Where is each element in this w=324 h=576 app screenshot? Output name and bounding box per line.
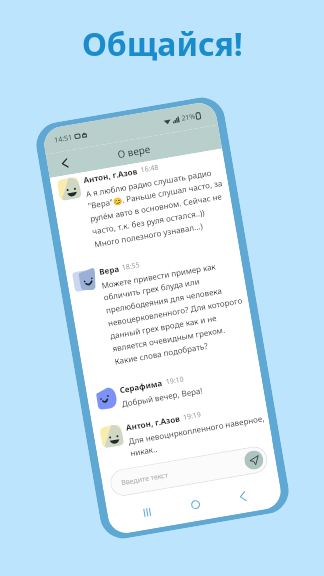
staticText: 19:10 bbox=[165, 374, 184, 387]
button[interactable]: Back bbox=[232, 486, 253, 506]
staticText: Антон, г.Азов bbox=[82, 165, 139, 185]
button[interactable]: Home bbox=[185, 494, 205, 515]
staticText: Общайся! bbox=[82, 22, 243, 66]
button[interactable]: Введите текст bbox=[108, 444, 269, 498]
button[interactable]: Recents bbox=[136, 502, 157, 523]
button[interactable]: Send bbox=[243, 449, 265, 471]
staticText: Для невоцнркопленного наверное, никак.. bbox=[127, 412, 267, 458]
staticText: Антон, г.Азов bbox=[125, 412, 181, 433]
staticText: О вере bbox=[116, 142, 151, 161]
staticText: А я люблю радио слушать радио "Вера"😊. Р… bbox=[85, 165, 231, 249]
staticText: 19:19 bbox=[182, 410, 202, 423]
staticText: 21% bbox=[181, 112, 196, 124]
button[interactable]: Back bbox=[55, 154, 74, 173]
staticText: Введите текст bbox=[121, 470, 170, 488]
staticText: Серафима bbox=[119, 377, 164, 395]
staticText: 14:51 bbox=[54, 133, 73, 146]
staticText: Добрый вечер, Вера! bbox=[121, 384, 204, 409]
staticText: 16:48 bbox=[140, 163, 159, 175]
staticText: Можете привести пример как обличить грех… bbox=[101, 257, 252, 367]
staticText: Вера bbox=[98, 263, 120, 277]
staticText: 18:55 bbox=[121, 260, 140, 273]
